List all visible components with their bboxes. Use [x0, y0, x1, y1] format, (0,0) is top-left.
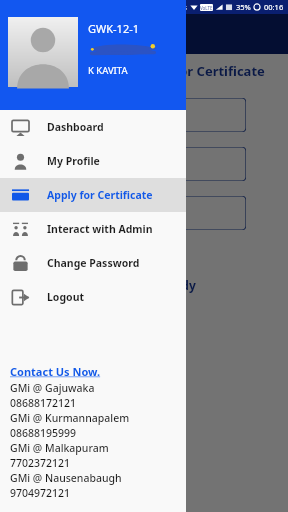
staticText: Interact with Admin: [47, 222, 153, 236]
button[interactable]: Interact with Admin: [0, 212, 186, 246]
button[interactable]: Apply for Certificate: [0, 178, 186, 212]
staticText: 00:16: [264, 2, 284, 12]
staticText: Logout: [47, 290, 85, 304]
staticText: My Profile: [47, 154, 100, 168]
staticText: 08688172121: [10, 396, 77, 410]
button[interactable]: Change Password: [0, 246, 186, 280]
staticText: GMi @ Malkapuram: [10, 441, 109, 455]
staticText: 9704972121: [10, 486, 71, 500]
button[interactable]: Logout: [0, 280, 186, 314]
staticText: 0.00 K/s: [159, 2, 187, 12]
button[interactable]: My Profile: [0, 144, 186, 178]
button[interactable]: Dashboard: [0, 110, 186, 144]
staticText: GMi @ Gajuwaka: [10, 381, 95, 395]
staticText: 08688195999: [10, 426, 77, 440]
staticText: Dashboard: [47, 120, 104, 134]
staticText: GWK-12-1: [88, 21, 140, 36]
staticText: 35%: [236, 2, 251, 12]
staticText: VoLTE: [200, 5, 213, 11]
staticText: Already: [150, 277, 196, 293]
staticText: K KAVITA: [88, 64, 128, 77]
staticText: Change Password: [47, 256, 140, 270]
staticText: Apply For Certificate: [132, 62, 265, 80]
staticText: Apply for Certificate: [47, 188, 153, 202]
staticText: 7702372121: [10, 456, 71, 470]
button[interactable]: Contact Us Now.: [10, 364, 101, 379]
staticText: GMi @ Kurmannapalem: [10, 411, 130, 425]
staticText: GMi @ Nausenabaugh: [10, 471, 122, 485]
